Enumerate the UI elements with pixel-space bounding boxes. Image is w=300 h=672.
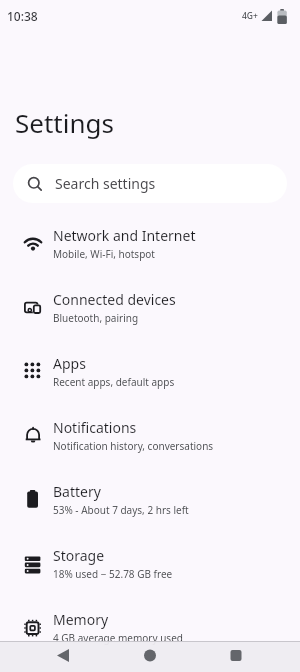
button[interactable] [0,641,100,672]
staticText: Battery [53,482,101,501]
button[interactable]: Storage [0,531,300,595]
staticText: Storage [53,546,105,565]
staticText: Apps [53,354,86,373]
button[interactable]: Memory [0,595,300,659]
staticText: Notification history, conversations [53,439,214,453]
staticText: 10:38 [7,8,38,24]
staticText: 18% used − 52.78 GB free [53,567,173,581]
staticText: Settings [15,105,114,140]
button[interactable]: Search settings [13,164,287,203]
button[interactable]: Battery [0,467,300,531]
staticText: 53% - About 7 days, 2 hrs left [53,503,189,517]
staticText: 4G+ [242,10,258,22]
staticText: Bluetooth, pairing [53,311,139,325]
staticText: Search settings [55,174,156,193]
staticText: Network and Internet [53,226,196,245]
button[interactable]: Connected devices [0,275,300,339]
staticText: 4 GB average memory used [53,631,183,645]
button[interactable]: Notifications [0,403,300,467]
button[interactable] [100,641,200,672]
staticText: Notifications [53,418,137,437]
staticText: Memory [53,610,109,629]
button[interactable]: Network and Internet [0,211,300,275]
staticText: Recent apps, default apps [53,375,175,389]
button[interactable] [200,641,300,672]
staticText: Connected devices [53,290,176,309]
staticText: Mobile, Wi-Fi, hotspot [53,247,155,261]
button[interactable]: Apps [0,339,300,403]
